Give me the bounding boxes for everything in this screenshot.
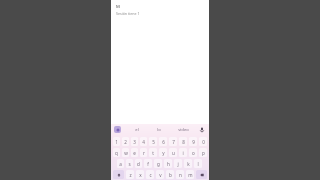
button[interactable]: c: [146, 170, 154, 179]
staticText: i: [182, 150, 184, 156]
button[interactable]: e: [131, 148, 138, 157]
staticText: h: [167, 161, 170, 167]
staticText: o: [192, 150, 195, 156]
staticText: 1: [115, 139, 118, 145]
button[interactable]: Shift: [113, 170, 124, 179]
staticText: p: [202, 150, 205, 156]
button[interactable]: u: [169, 148, 177, 157]
staticText: g: [157, 161, 160, 167]
staticText: e: [133, 150, 136, 156]
staticText: M: [116, 4, 120, 10]
staticText: 0: [202, 139, 205, 145]
button[interactable]: 6: [159, 137, 167, 146]
button[interactable]: q: [113, 148, 120, 157]
button[interactable]: r: [140, 148, 147, 157]
staticText: 8: [182, 139, 185, 145]
staticText: Sesión tiene 1: [116, 11, 140, 16]
button[interactable]: o: [189, 148, 197, 157]
staticText: 4: [142, 139, 145, 145]
staticText: n: [179, 172, 182, 178]
staticText: 7: [172, 139, 175, 145]
button[interactable]: g: [154, 159, 162, 168]
button[interactable]: video: [170, 124, 196, 135]
button[interactable]: f: [144, 159, 152, 168]
button[interactable]: w: [122, 148, 129, 157]
button[interactable]: m: [186, 170, 194, 179]
button[interactable]: lo: [148, 124, 170, 135]
button[interactable]: k: [184, 159, 192, 168]
staticText: x: [139, 172, 142, 178]
button[interactable]: z: [126, 170, 134, 179]
button[interactable]: 1: [113, 137, 120, 146]
staticText: lo: [157, 127, 161, 133]
button[interactable]: 8: [179, 137, 187, 146]
staticText: a: [119, 161, 122, 167]
staticText: 2: [124, 139, 127, 145]
button[interactable]: 7: [169, 137, 177, 146]
button[interactable]: 2: [122, 137, 129, 146]
staticText: el: [135, 127, 139, 133]
button[interactable]: 9: [189, 137, 197, 146]
button[interactable]: x: [136, 170, 144, 179]
button[interactable]: y: [159, 148, 167, 157]
button[interactable]: j: [174, 159, 182, 168]
button[interactable]: el: [126, 124, 148, 135]
staticText: c: [149, 172, 152, 178]
staticText: t: [152, 150, 154, 156]
staticText: 5: [152, 139, 155, 145]
button[interactable]: 4: [140, 137, 147, 146]
staticText: w: [124, 150, 128, 156]
staticText: r: [143, 150, 145, 156]
staticText: u: [172, 150, 175, 156]
button[interactable]: s: [126, 159, 133, 168]
button[interactable]: p: [199, 148, 207, 157]
staticText: 6: [162, 139, 165, 145]
button[interactable]: n: [176, 170, 184, 179]
staticText: j: [177, 161, 179, 167]
button[interactable]: 0: [199, 137, 207, 146]
button[interactable]: v: [156, 170, 164, 179]
staticText: q: [115, 150, 118, 156]
staticText: 9: [192, 139, 195, 145]
staticText: b: [169, 172, 172, 178]
button[interactable]: i: [179, 148, 187, 157]
button[interactable]: a: [117, 159, 124, 168]
button[interactable]: Backspace: [196, 170, 207, 179]
button[interactable]: b: [166, 170, 174, 179]
staticText: y: [162, 150, 165, 156]
button[interactable]: l: [194, 159, 202, 168]
staticText: v: [159, 172, 162, 178]
staticText: l: [197, 161, 199, 167]
button[interactable]: Voice input: [198, 126, 206, 134]
staticText: z: [129, 172, 132, 178]
staticText: m: [188, 172, 193, 178]
staticText: 3: [133, 139, 136, 145]
button[interactable]: h: [164, 159, 172, 168]
button[interactable]: d: [135, 159, 142, 168]
button[interactable]: 5: [149, 137, 157, 146]
staticText: d: [137, 161, 140, 167]
staticText: video: [178, 127, 189, 133]
staticText: k: [187, 161, 190, 167]
button[interactable]: 3: [131, 137, 138, 146]
button[interactable]: t: [149, 148, 157, 157]
staticText: f: [147, 161, 149, 167]
staticText: s: [128, 161, 131, 167]
button[interactable]: Google assistant: [114, 126, 121, 133]
